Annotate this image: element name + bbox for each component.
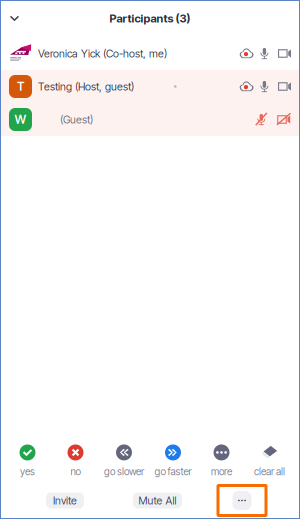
- button[interactable]: no: [51, 442, 99, 480]
- button[interactable]: More participant options: [232, 491, 251, 510]
- button[interactable]: Veronica Yick (Co-host, me): [0, 37, 300, 70]
- staticText: clear all: [254, 465, 285, 478]
- button[interactable]: Mute All: [133, 492, 182, 508]
- button[interactable]: Invite: [46, 492, 84, 508]
- staticText: Veronica Yick (Co-host, me): [38, 47, 167, 60]
- staticText: more: [211, 465, 232, 478]
- staticText: no: [70, 465, 80, 478]
- staticText: Participants (3): [109, 12, 190, 25]
- button[interactable]: clear all: [245, 442, 293, 480]
- button[interactable]: yes: [3, 442, 51, 480]
- staticText: yes: [20, 465, 35, 478]
- staticText: W: [14, 112, 26, 127]
- staticText: Testing (Host, guest): [38, 80, 134, 93]
- button[interactable]: go faster: [148, 442, 197, 480]
- button[interactable]: more: [197, 442, 245, 480]
- staticText: Mute All: [138, 494, 176, 507]
- button[interactable]: Collapse participants: [0, 4, 29, 33]
- staticText: go slower: [104, 465, 144, 478]
- staticText: T: [17, 79, 24, 94]
- staticText: (Guest): [60, 113, 93, 126]
- staticText: Invite: [53, 494, 77, 507]
- button[interactable]: W: [0, 103, 300, 136]
- button[interactable]: T: [0, 70, 300, 103]
- button[interactable]: go slower: [99, 442, 148, 480]
- staticText: go faster: [154, 465, 191, 478]
